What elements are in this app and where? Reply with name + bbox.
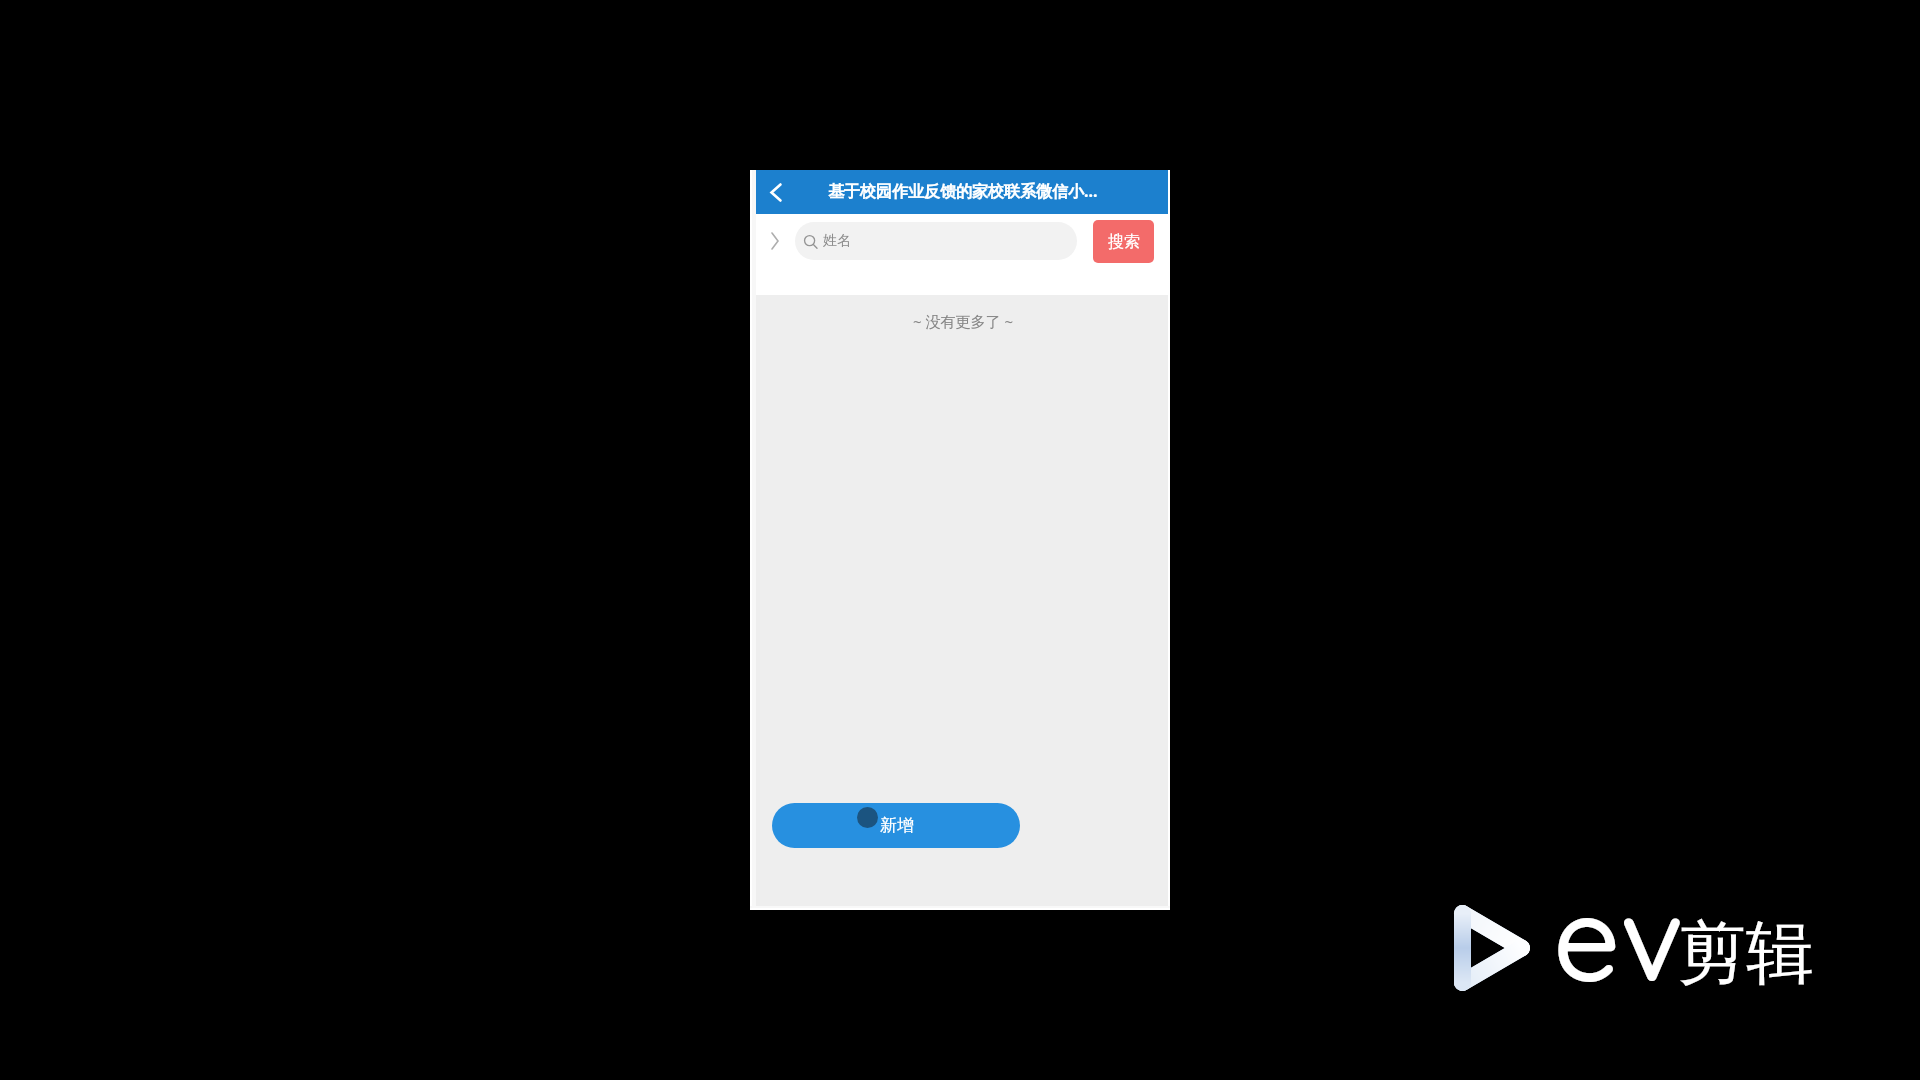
button[interactable]: 搜索 bbox=[1093, 220, 1154, 263]
staticText: 姓名 bbox=[823, 232, 851, 250]
button[interactable]: 新增 bbox=[772, 803, 1020, 848]
staticText: 剪辑 bbox=[1678, 911, 1814, 997]
staticText: 搜索 bbox=[1108, 232, 1140, 252]
button[interactable]: Back bbox=[756, 170, 796, 214]
staticText: ev bbox=[1553, 863, 1684, 1011]
button[interactable]: 姓名 bbox=[795, 222, 1077, 260]
button[interactable]: Expand filter bbox=[764, 222, 786, 260]
staticText: 基于校园作业反馈的家校联系微信小... bbox=[828, 180, 1098, 202]
staticText: ~ 没有更多了 ~ bbox=[913, 311, 1013, 331]
staticText: 新增 bbox=[880, 815, 914, 836]
